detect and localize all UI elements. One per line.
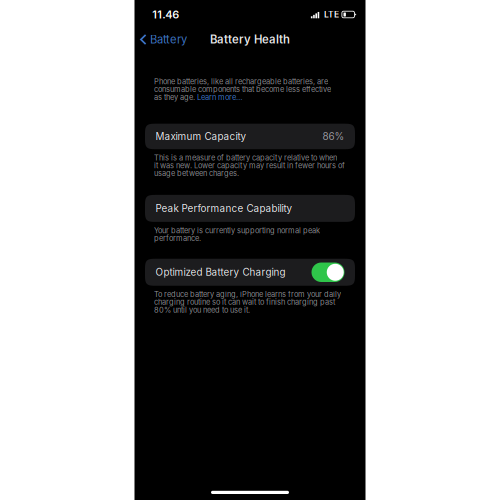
staticText: Maximum Capacity xyxy=(155,130,246,142)
staticText: 11.46 xyxy=(152,8,179,21)
staticText: 86% xyxy=(322,130,344,142)
staticText: charging routine so it can wait to finis… xyxy=(154,298,335,307)
staticText: consumable components that become less e… xyxy=(154,85,331,94)
staticText: LTE xyxy=(324,9,339,20)
staticText: To reduce battery aging, iPhone learns f… xyxy=(154,290,341,299)
staticText: Optimized Battery Charging xyxy=(155,266,285,278)
staticText: usage between charges. xyxy=(154,169,239,178)
staticText: This is a measure of battery capacity re… xyxy=(154,153,337,162)
staticText: Your battery is currently supporting nor… xyxy=(154,226,320,235)
staticText: it was new. Lower capacity may result in… xyxy=(154,161,345,170)
staticText: Battery Health xyxy=(210,33,290,46)
staticText: Peak Performance Capability xyxy=(155,202,292,214)
button[interactable]: Maximum Capacity xyxy=(145,124,355,149)
button[interactable]: Optimized Battery Charging xyxy=(145,259,355,286)
staticText: performance. xyxy=(154,234,201,243)
staticText: 80% until you need to use it. xyxy=(154,305,250,314)
button[interactable]: Peak Performance Capability xyxy=(145,195,355,222)
staticText: Phone batteries, like all rechargeable b… xyxy=(154,77,328,86)
staticText: Battery xyxy=(150,33,187,46)
staticText: Learn more… xyxy=(197,93,242,102)
button[interactable]: Battery xyxy=(134,29,193,50)
staticText: as they age. xyxy=(154,93,195,102)
